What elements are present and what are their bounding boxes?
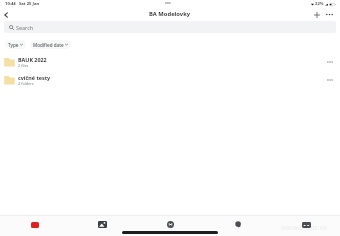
button[interactable]: More options [323,8,336,21]
staticText: 10:44 [5,1,16,7]
button[interactable]: Keyboard [301,219,312,230]
staticText: 2 folders [18,81,34,86]
button[interactable]: Modified date [30,40,71,49]
button[interactable]: cvičné testy [0,71,340,89]
staticText: Search [16,24,34,31]
staticText: www.bazos.sk [281,223,327,232]
button[interactable]: BAUK 2022 [0,53,340,71]
staticText: cvičné testy [18,74,51,81]
staticText: 2 files [18,63,29,68]
button[interactable]: Item options [324,56,336,68]
staticText: Modified date [33,42,64,48]
button[interactable]: YouTube [29,219,40,230]
button[interactable]: Item options [324,74,336,86]
button[interactable]: Search [4,21,336,33]
staticText: Sat 25 Jan [19,1,40,7]
button[interactable]: Assistant [165,219,176,230]
staticText: BAUK 2022 [18,56,47,63]
button[interactable]: Messages [233,219,244,230]
staticText: Type [8,42,19,48]
button[interactable]: Type [5,40,26,49]
button[interactable]: Add [310,8,323,21]
button[interactable]: Back [0,9,11,20]
staticText: BA Modelovky [149,10,191,18]
staticText: 22% [315,1,324,7]
button[interactable]: Photos [97,219,108,230]
